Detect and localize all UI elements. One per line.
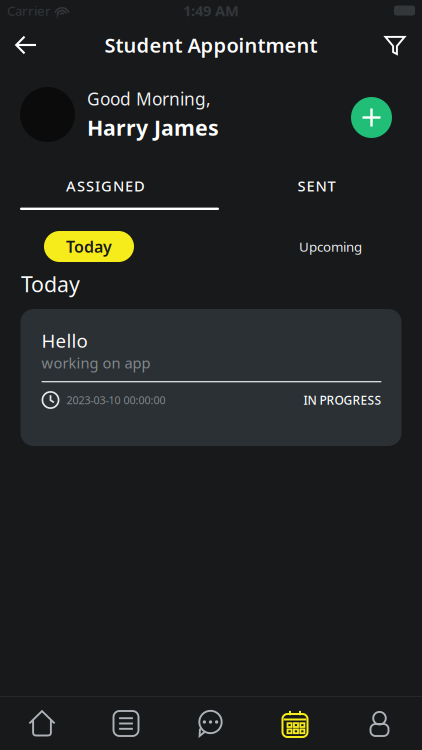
staticText: 2023-03-10 00:00:00 bbox=[66, 393, 165, 407]
staticText: Student Appointment bbox=[104, 32, 317, 58]
staticText: working on app bbox=[41, 353, 150, 372]
button[interactable]: Today bbox=[44, 231, 134, 262]
button[interactable]: Calendar bbox=[253, 697, 337, 750]
button[interactable]: Filter bbox=[368, 21, 422, 69]
button[interactable]: Upcoming bbox=[299, 231, 362, 262]
button[interactable]: ASSIGNED bbox=[0, 160, 211, 212]
button[interactable]: Add appointment bbox=[351, 94, 392, 135]
staticText: Upcoming bbox=[299, 238, 362, 255]
button[interactable]: Profile bbox=[337, 697, 422, 750]
staticText: ASSIGNED bbox=[66, 176, 145, 195]
button[interactable]: SENT bbox=[211, 160, 422, 212]
staticText: Hello bbox=[41, 328, 87, 353]
staticText: Today bbox=[66, 236, 112, 257]
staticText: Good Morning, bbox=[87, 87, 211, 110]
staticText: 1:49 AM bbox=[183, 1, 239, 20]
staticText: IN PROGRESS bbox=[303, 392, 381, 408]
button[interactable]: Tasks bbox=[84, 697, 168, 750]
staticText: Carrier bbox=[7, 2, 51, 19]
button[interactable]: Home bbox=[0, 697, 84, 750]
staticText: Harry James bbox=[87, 113, 219, 142]
staticText: SENT bbox=[297, 176, 335, 195]
button[interactable]: Back bbox=[0, 21, 52, 69]
staticText: Today bbox=[21, 270, 80, 298]
button[interactable]: Messages bbox=[168, 697, 253, 750]
